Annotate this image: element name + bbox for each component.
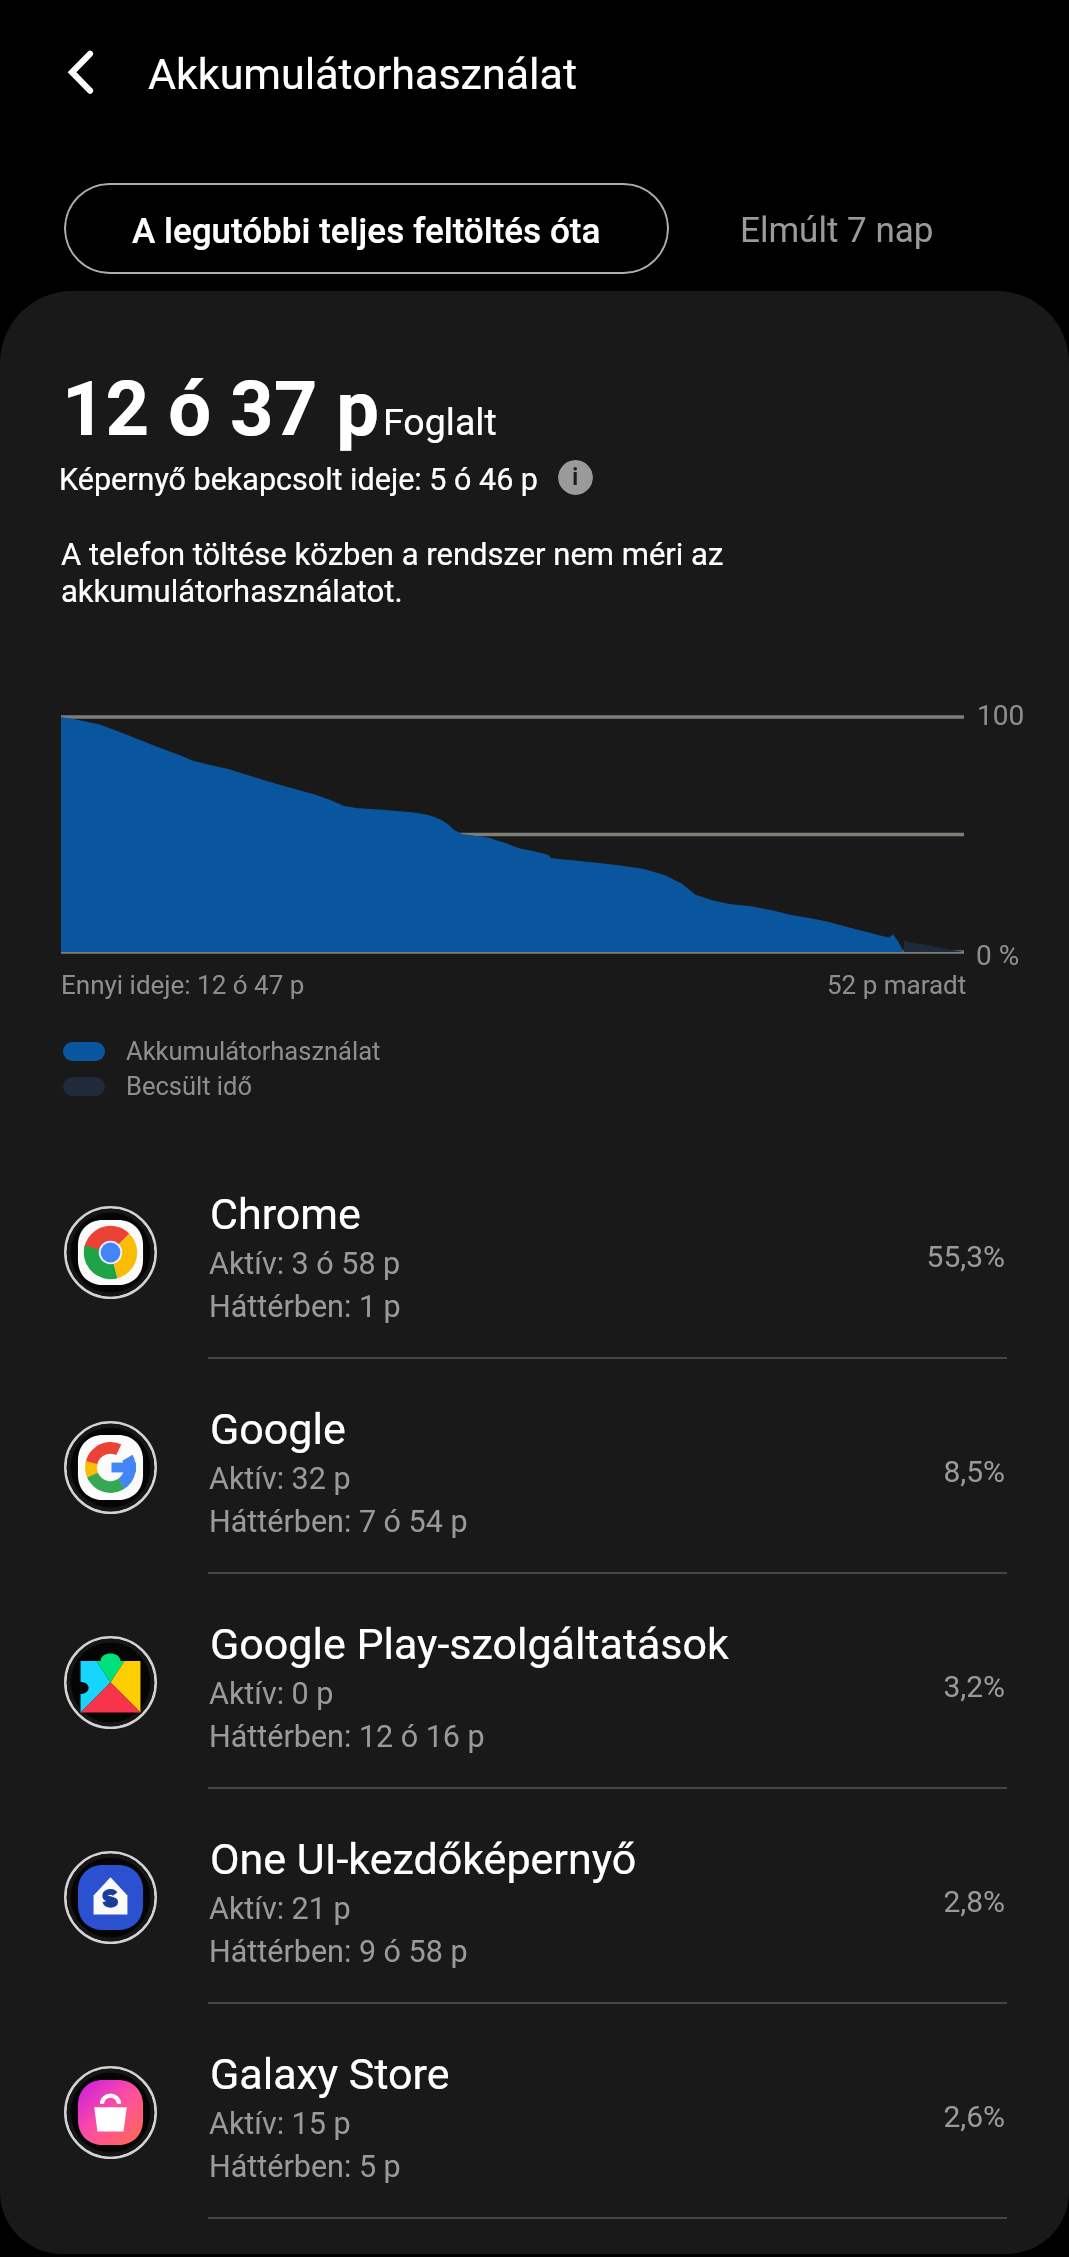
staticText: Aktív: 32 p <box>209 1460 351 1497</box>
staticText: Akkumulátorhasználat <box>126 1036 381 1067</box>
button[interactable]: Information <box>558 460 593 495</box>
staticText: i <box>572 462 579 491</box>
staticText: A legutóbbi teljes feltöltés óta <box>132 210 601 252</box>
staticText: Foglalt <box>383 399 497 444</box>
staticText: 3,2% <box>705 1668 1005 1704</box>
button[interactable]: Google <box>0 1358 1069 1573</box>
staticText: Ennyi ideje: 12 ó 47 p <box>61 969 305 1000</box>
staticText: 8,5% <box>705 1453 1005 1489</box>
button[interactable]: Back <box>40 30 124 114</box>
staticText: Háttérben: 12 ó 16 p <box>209 1718 485 1755</box>
button[interactable]: Galaxy Store <box>0 2003 1069 2218</box>
staticText: Aktív: 21 p <box>209 1890 351 1927</box>
staticText: Akkumulátorhasználat <box>148 48 577 100</box>
staticText: Chrome <box>210 1188 361 1240</box>
staticText: 0 % <box>976 938 1020 972</box>
staticText: 52 p maradt <box>827 969 967 1000</box>
staticText: Háttérben: 1 p <box>209 1288 401 1325</box>
staticText: Elmúlt 7 nap <box>740 209 934 251</box>
button[interactable]: One UI-kezdőképernyő <box>0 1788 1069 2003</box>
staticText: Háttérben: 5 p <box>209 2148 401 2185</box>
staticText: 100 <box>977 698 1025 732</box>
staticText: Aktív: 15 p <box>209 2105 351 2142</box>
staticText: Becsült idő <box>126 1071 252 1102</box>
staticText: Képernyő bekapcsolt ideje: 5 ó 46 p <box>59 461 538 498</box>
staticText: 2,6% <box>705 2098 1005 2134</box>
staticText: Google <box>210 1403 346 1455</box>
button[interactable]: Google Play-szolgáltatások <box>0 1573 1069 1788</box>
staticText: Google Play-szolgáltatások <box>210 1618 729 1670</box>
staticText: 12 ó 37 p <box>62 363 379 454</box>
staticText: A telefon töltése közben a rendszer nem … <box>61 536 761 610</box>
staticText: Háttérben: 9 ó 58 p <box>209 1933 468 1970</box>
staticText: 2,8% <box>705 1883 1005 1919</box>
staticText: One UI-kezdőképernyő <box>210 1833 637 1885</box>
button[interactable]: Chrome <box>0 1143 1069 1358</box>
staticText: Aktív: 3 ó 58 p <box>209 1245 401 1282</box>
button[interactable]: A legutóbbi teljes feltöltés óta <box>64 183 669 274</box>
staticText: Aktív: 0 p <box>209 1675 334 1712</box>
staticText: Galaxy Store <box>210 2048 450 2100</box>
staticText: 55,3% <box>705 1238 1005 1274</box>
button[interactable]: Elmúlt 7 nap <box>697 183 977 274</box>
staticText: Háttérben: 7 ó 54 p <box>209 1503 468 1540</box>
